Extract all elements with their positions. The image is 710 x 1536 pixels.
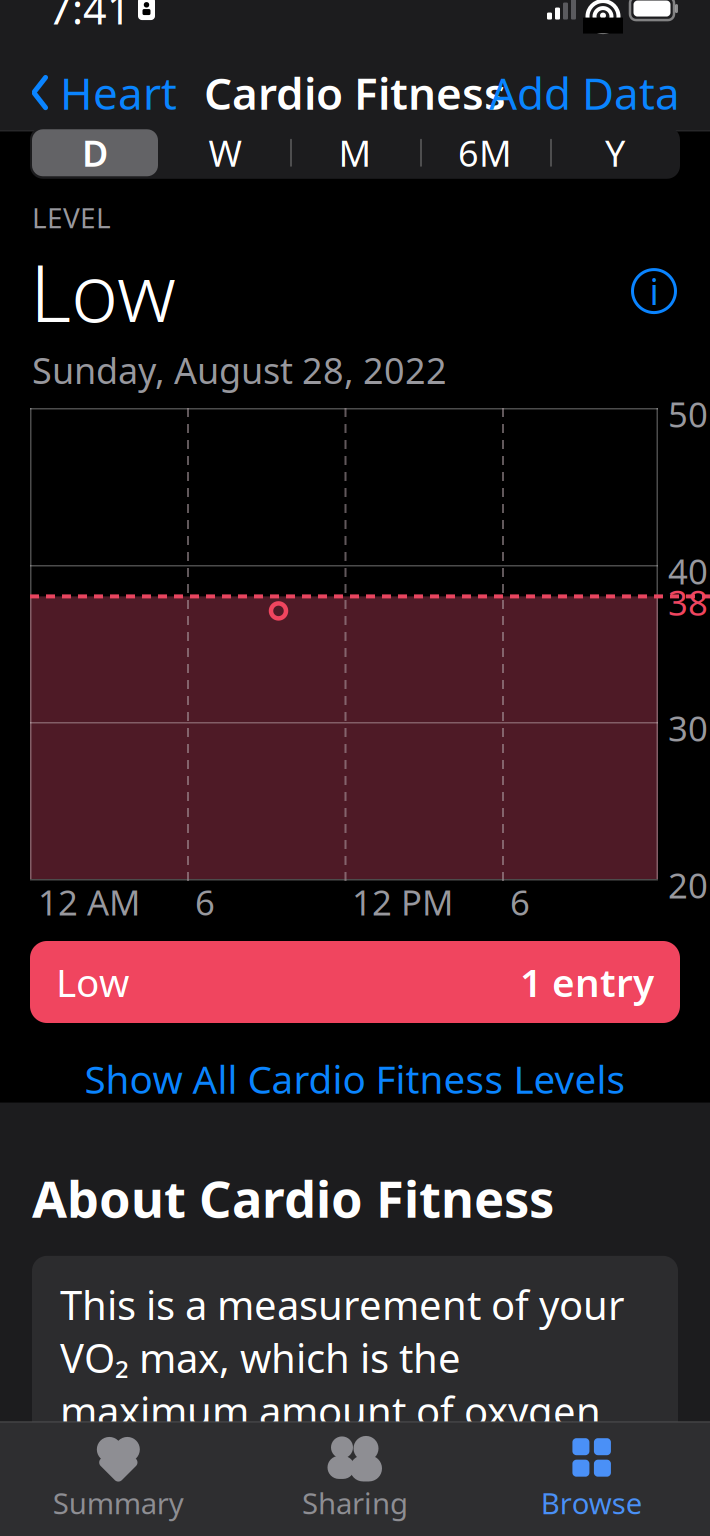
staticText: 50 [668, 391, 708, 437]
staticText: 6 [510, 879, 530, 925]
staticText: Add Data [489, 63, 680, 122]
staticText: Low [30, 238, 176, 344]
staticText: This is a measurement of your VO₂ max, w… [60, 1278, 645, 1536]
staticText: 20 [668, 862, 708, 908]
button[interactable]: M [290, 127, 420, 179]
button[interactable]: Sharing [237, 1422, 473, 1522]
button[interactable]: W [160, 127, 290, 179]
staticText: 6 [195, 879, 215, 925]
staticText: Browse [541, 1483, 643, 1522]
staticText: 30 [668, 705, 708, 751]
button[interactable]: 6M [420, 127, 550, 179]
staticText: W [208, 129, 241, 177]
staticText: 12 AM [38, 879, 140, 925]
button[interactable]: Add Data [473, 55, 696, 130]
button[interactable]: About Cardio Fitness levels [624, 261, 684, 321]
staticText: About Cardio Fitness [32, 1165, 554, 1232]
staticText: M [338, 129, 371, 177]
button[interactable]: Summary [0, 1422, 237, 1522]
staticText: Cardio Fitness [204, 63, 506, 122]
button[interactable]: Heart [14, 55, 193, 130]
staticText: 12 PM [352, 879, 453, 925]
button[interactable]: Low [30, 941, 680, 1023]
staticText: Show All Cardio Fitness Levels [84, 1053, 625, 1104]
staticText: 1 entry [520, 956, 654, 1008]
staticText: Sharing [302, 1483, 408, 1522]
staticText: Heart [60, 63, 177, 122]
staticText: i [649, 267, 658, 315]
staticText: Sunday, August 28, 2022 [32, 346, 447, 394]
button[interactable]: Show All Cardio Fitness Levels [0, 1041, 710, 1116]
staticText: Low [56, 956, 129, 1008]
staticText: 7:41 [48, 0, 131, 36]
staticText: 40 [668, 548, 708, 594]
button[interactable]: D [30, 127, 160, 179]
staticText: 38 [668, 579, 708, 625]
button[interactable]: Browse [473, 1422, 710, 1522]
staticText: 6M [458, 129, 512, 177]
button[interactable]: Y [550, 127, 680, 179]
staticText: Y [605, 129, 625, 177]
staticText: LEVEL [32, 199, 111, 236]
staticText: Summary [53, 1483, 184, 1522]
staticText: D [82, 129, 108, 177]
